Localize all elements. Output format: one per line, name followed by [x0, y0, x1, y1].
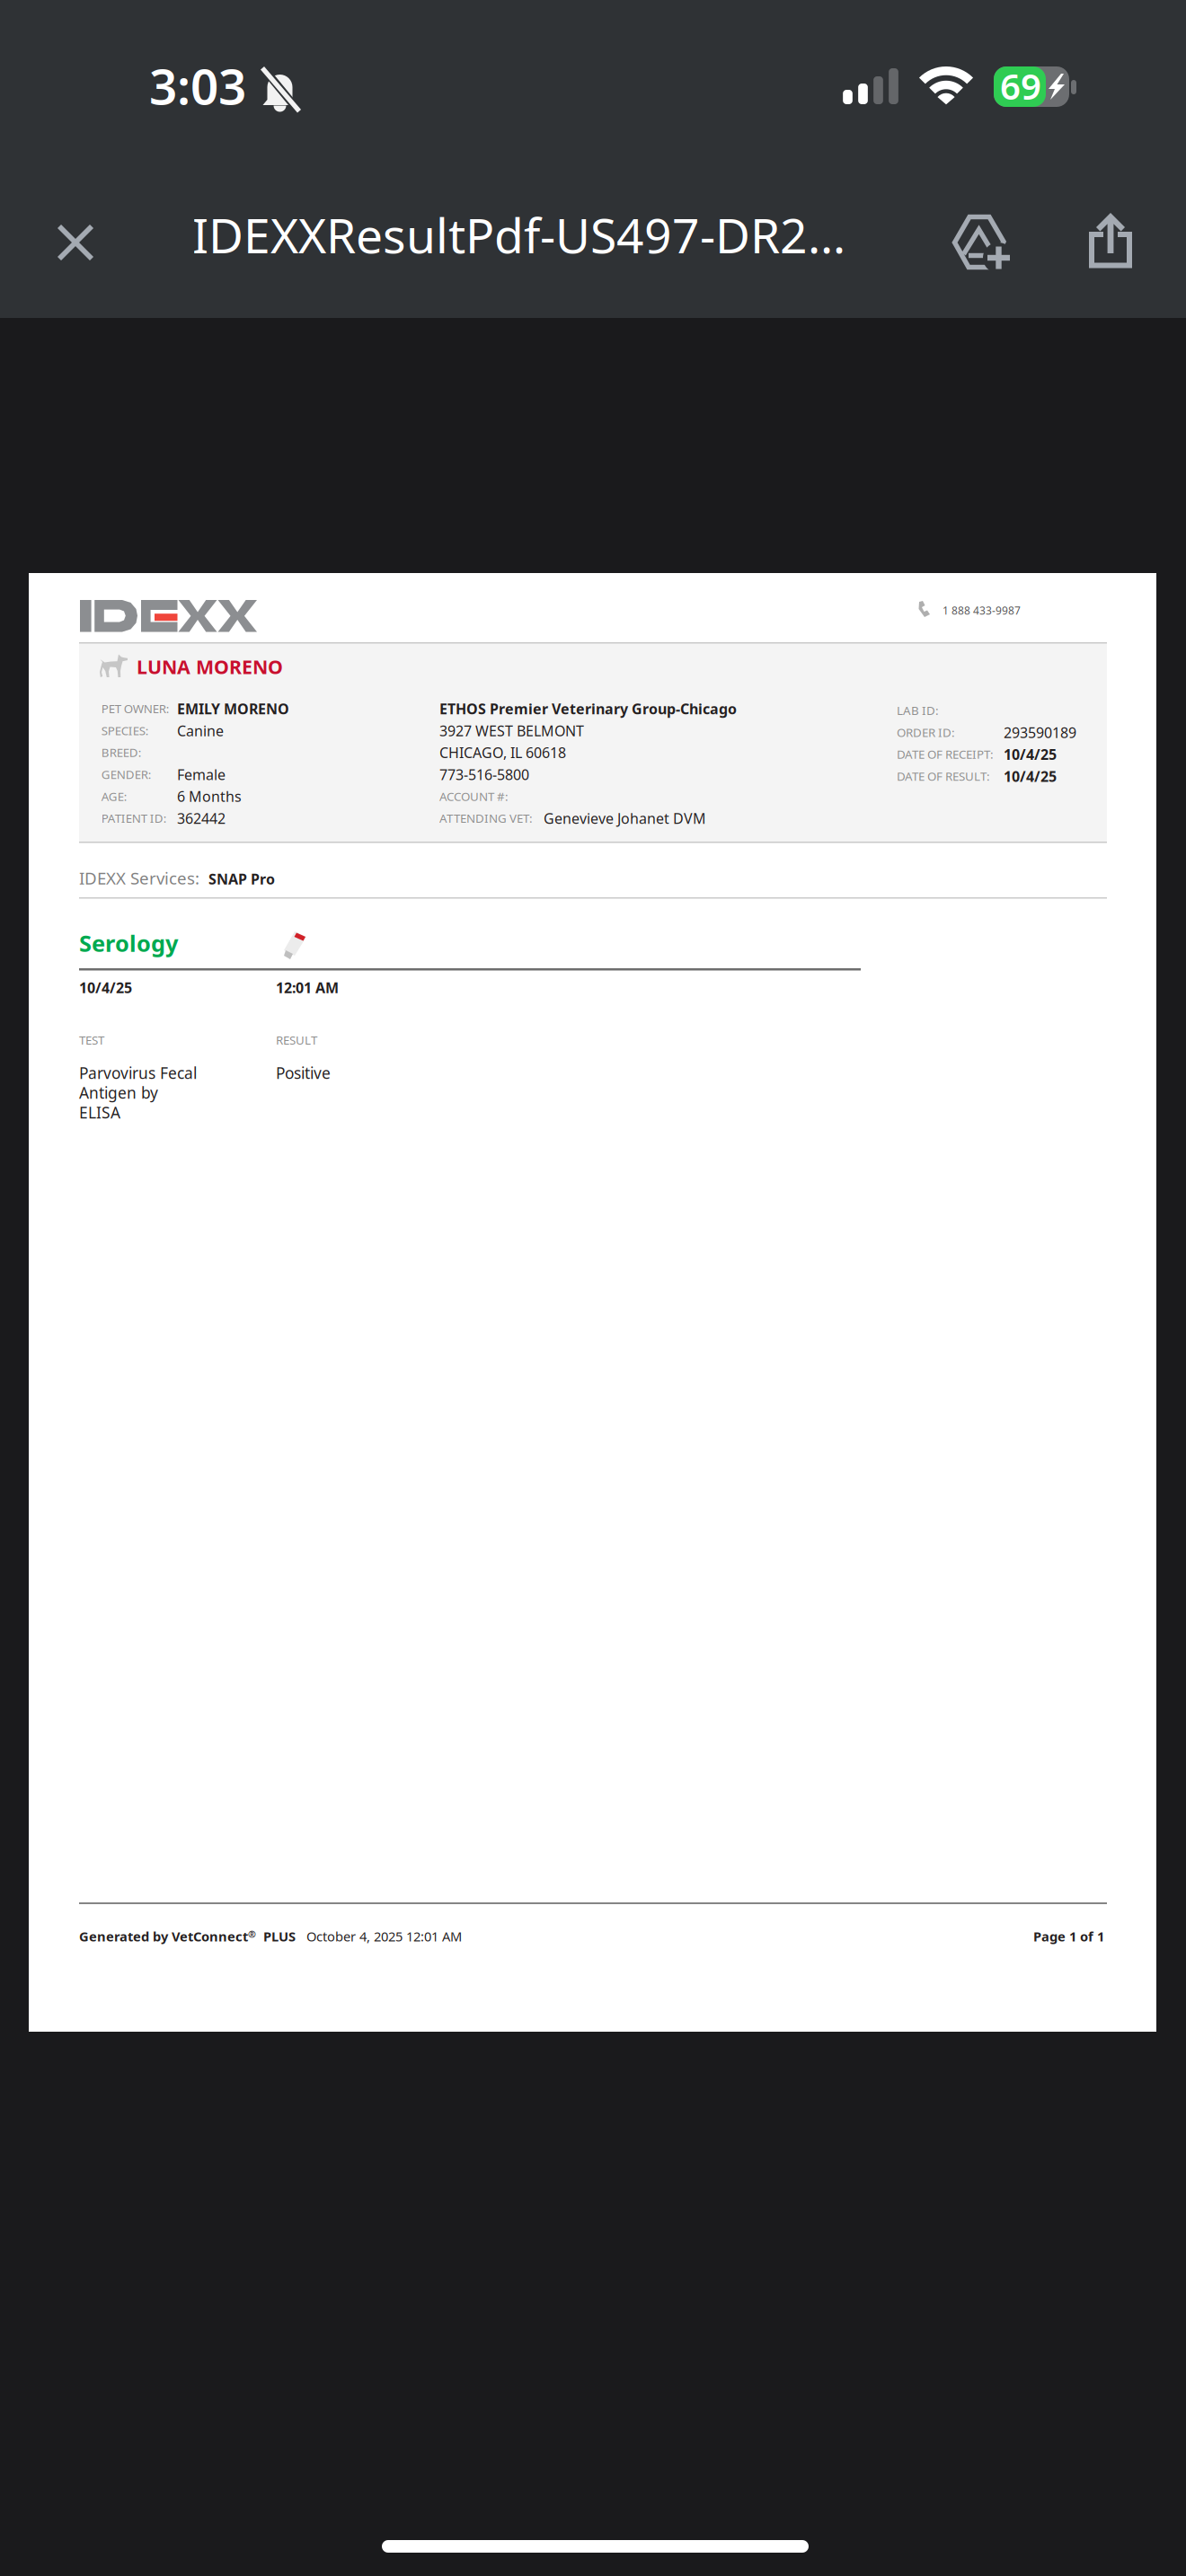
- staticText: IDEXX Services:: [79, 867, 199, 889]
- button[interactable]: Share: [1064, 194, 1157, 287]
- staticText: Antigen by: [79, 1082, 158, 1103]
- staticText: DATE OF RESULT:: [897, 768, 990, 784]
- button[interactable]: Close: [29, 196, 122, 289]
- staticText: BREED:: [101, 744, 142, 760]
- staticText: SNAP Pro: [208, 869, 275, 888]
- staticText: Parvovirus Fecal: [79, 1063, 197, 1083]
- staticText: PATIENT ID:: [101, 810, 167, 826]
- staticText: 6 Months: [177, 787, 242, 806]
- staticText: Positive: [276, 1063, 331, 1083]
- staticText: ELISA: [79, 1102, 120, 1123]
- staticText: RESULT: [276, 1032, 317, 1048]
- staticText: 3:03: [149, 53, 246, 118]
- staticText: 773-516-5800: [439, 765, 529, 784]
- staticText: Serology: [79, 928, 178, 958]
- staticText: Generated by VetConnect: [79, 1928, 248, 1945]
- staticText: ETHOS Premier Veterinary Group-Chicago: [439, 699, 737, 718]
- staticText: 293590189: [1004, 723, 1076, 742]
- staticText: ATTENDING VET:: [439, 810, 533, 826]
- staticText: 1 888 433-9987: [943, 603, 1021, 617]
- staticText: LAB ID:: [897, 702, 939, 718]
- staticText: IDEXXResultPdf-US497-DR2…: [192, 203, 845, 267]
- staticText: 10/4/25: [1004, 767, 1057, 786]
- staticText: 362442: [177, 809, 226, 828]
- staticText: CHICAGO, IL 60618: [439, 743, 566, 762]
- staticText: DATE OF RECEIPT:: [897, 746, 994, 762]
- staticText: GENDER:: [101, 766, 152, 782]
- staticText: 10/4/25: [1004, 745, 1057, 764]
- staticText: ®: [248, 1928, 256, 1940]
- staticText: SPECIES:: [101, 723, 149, 738]
- staticText: TEST: [79, 1032, 104, 1048]
- staticText: October 4, 2025 12:01 AM: [296, 1928, 462, 1945]
- staticText: Canine: [177, 721, 224, 740]
- staticText: Genevieve Johanet DVM: [544, 809, 706, 828]
- staticText: LUNA MORENO: [137, 654, 283, 679]
- staticText: 69: [1000, 62, 1041, 110]
- staticText: AGE:: [101, 788, 127, 804]
- button[interactable]: Markup: [935, 196, 1029, 289]
- staticText: PLUS: [256, 1928, 296, 1945]
- staticText: PET OWNER:: [101, 701, 170, 716]
- staticText: Female: [177, 765, 226, 784]
- staticText: Page 1 of 1: [1033, 1928, 1104, 1945]
- staticText: 10/4/25: [79, 978, 132, 997]
- staticText: 12:01 AM: [276, 978, 339, 997]
- staticText: 3927 WEST BELMONT: [439, 721, 584, 740]
- staticText: EMILY MORENO: [177, 699, 289, 718]
- staticText: ACCOUNT #:: [439, 788, 509, 804]
- staticText: ORDER ID:: [897, 724, 955, 740]
